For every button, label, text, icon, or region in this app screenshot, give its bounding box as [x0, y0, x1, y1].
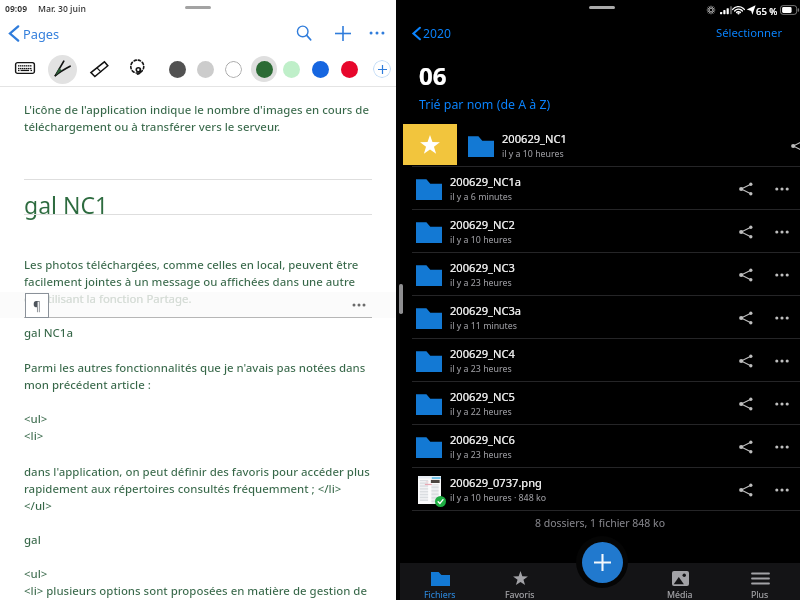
button[interactable]: Média [640, 563, 720, 600]
button[interactable]: More options [769, 167, 795, 210]
staticText: 200629_NC4 [450, 346, 515, 361]
button[interactable]: Colour [197, 61, 214, 78]
button[interactable]: 200629_NC3 [400, 253, 800, 296]
staticText: il y a 10 heures [450, 234, 512, 246]
staticText: rapidement aux répertoires consultés fré… [24, 481, 342, 497]
staticText: ¶ [33, 298, 41, 314]
button[interactable]: Keyboard [15, 62, 35, 74]
staticText: il y a 23 heures [450, 277, 512, 289]
button[interactable]: 200629_NC1a [400, 167, 800, 210]
staticText: mon précédent article : [24, 377, 151, 393]
button[interactable]: More options [769, 210, 795, 253]
button[interactable]: Share [732, 382, 760, 425]
button[interactable]: Share [732, 425, 760, 468]
staticText: Mar. 30 juin [38, 3, 86, 15]
staticText: il y a 6 minutes [450, 191, 512, 203]
staticText: gal NC1 [24, 189, 109, 220]
button[interactable]: 200629_NC4 [400, 339, 800, 382]
button[interactable]: More options [769, 468, 795, 511]
button[interactable]: Add [332, 22, 354, 44]
staticText: 200629_0737.png [450, 475, 542, 490]
button[interactable]: Share [732, 339, 760, 382]
button[interactable]: More options [769, 425, 795, 468]
staticText: Les photos téléchargées, comme celles en… [24, 257, 359, 273]
staticText: 06 [419, 59, 447, 92]
button[interactable]: Share [732, 468, 760, 511]
staticText: 2020 [423, 25, 451, 42]
staticText: L'icône de l'application indique le nomb… [24, 102, 369, 118]
button[interactable]: More options [769, 296, 795, 339]
button[interactable]: Share [732, 210, 760, 253]
button[interactable]: Eraser [90, 60, 108, 78]
staticText: facilement jointes à un message ou affic… [24, 274, 356, 290]
staticText: dans l'application, on peut définir des … [24, 464, 370, 480]
staticText: <li> [24, 428, 44, 444]
button[interactable]: Search [293, 22, 315, 44]
staticText: 8 dossiers, 1 fichier 848 ko [400, 516, 800, 530]
staticText: Sélectionner [716, 25, 783, 40]
staticText: </ul> [24, 498, 52, 514]
staticText: <ul> [24, 411, 48, 427]
staticText: 200629_NC1a [450, 174, 522, 189]
staticText: il y a 23 heures [450, 363, 512, 375]
staticText: gal [24, 532, 41, 548]
staticText: 200629_NC1 [502, 131, 567, 146]
staticText: Trié par nom (de A à Z) [419, 96, 551, 113]
button[interactable]: Favourite [403, 124, 457, 165]
button[interactable]: Share [732, 167, 760, 210]
staticText: 200629_NC5 [450, 389, 515, 404]
button[interactable]: 200629_NC3a [400, 296, 800, 339]
button[interactable]: Share [732, 296, 760, 339]
button[interactable]: Add colour [373, 60, 391, 78]
button[interactable]: Pages [9, 23, 60, 43]
staticText: 200629_NC6 [450, 432, 515, 447]
staticText: Parmi les autres fonctionnalités que je … [24, 360, 366, 376]
button[interactable]: More options [769, 382, 795, 425]
staticText: 200629_NC2 [450, 217, 515, 232]
staticText: il y a 10 heures [502, 148, 564, 160]
button[interactable]: 200629_NC1 [468, 124, 567, 167]
button[interactable]: Colour [341, 61, 358, 78]
button[interactable]: Pen [48, 55, 77, 84]
button[interactable]: Favoris [480, 563, 560, 600]
button[interactable]: Colour [312, 61, 329, 78]
staticText: Plus [751, 589, 769, 600]
button[interactable]: Colour [283, 61, 300, 78]
button[interactable]: 200629_0737.png [400, 468, 800, 511]
staticText: il y a 11 minutes [450, 320, 517, 332]
button[interactable]: Colour [225, 61, 242, 78]
other: Share [790, 138, 800, 154]
staticText: Pages [23, 25, 60, 42]
staticText: <ul> [24, 566, 48, 582]
button[interactable]: 200629_NC5 [400, 382, 800, 425]
button[interactable]: Green colour [251, 56, 277, 82]
button[interactable]: Add [582, 542, 623, 583]
button[interactable]: More options [769, 253, 795, 296]
button[interactable]: Share [732, 253, 760, 296]
staticText: Média [667, 589, 693, 600]
staticText: <li> plusieurs options sont proposées en… [24, 583, 368, 599]
button[interactable]: Colour [169, 61, 186, 78]
button[interactable]: Fichiers [400, 563, 480, 600]
staticText: Favoris [505, 589, 535, 600]
button[interactable]: 2020 [412, 23, 451, 43]
staticText: il y a 23 heures [450, 449, 512, 461]
staticText: téléchargement ou à transférer vers le s… [24, 119, 281, 135]
button[interactable]: Sélectionner [716, 25, 783, 40]
button[interactable]: 200629_NC2 [400, 210, 800, 253]
button[interactable]: Lasso [129, 59, 147, 77]
staticText: il y a 10 heures · 848 ko [450, 492, 546, 504]
button[interactable]: More options [366, 22, 388, 44]
staticText: en utilisant la fonction Partage. [24, 291, 192, 307]
staticText: 200629_NC3 [450, 260, 515, 275]
staticText: 09:09 [5, 3, 28, 15]
button[interactable]: Plus [720, 563, 800, 600]
staticText: 65 % [756, 5, 778, 18]
button[interactable]: Paragraph style [25, 293, 49, 318]
button[interactable]: More options [769, 339, 795, 382]
staticText: Fichiers [424, 589, 456, 600]
button[interactable]: 200629_NC6 [400, 425, 800, 468]
staticText: 200629_NC3a [450, 303, 522, 318]
button[interactable]: Format options [348, 297, 370, 313]
button[interactable]: Trié par nom (de A à Z) [419, 96, 551, 113]
